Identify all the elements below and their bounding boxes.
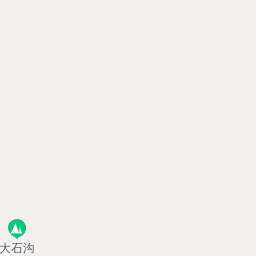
button[interactable]: 大石沟: [0, 217, 54, 255]
staticText: 大石沟: [0, 241, 52, 256]
